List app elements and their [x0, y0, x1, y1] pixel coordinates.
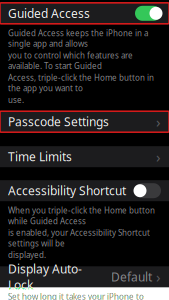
staticText: displayed.: [8, 250, 46, 260]
staticText: Time Limits: [8, 149, 72, 165]
staticText: Accessibility Shortcut: [8, 183, 126, 199]
staticText: ›: [156, 112, 161, 131]
staticText: Passcode Settings: [8, 114, 109, 130]
button[interactable]: Display Auto-Lock: [0, 266, 169, 287]
staticText: When you triple-click the Home button wh…: [8, 205, 155, 226]
staticText: ›: [156, 267, 161, 287]
staticText: Display Auto-Lock: [8, 261, 82, 293]
button[interactable]: Guided Access: [0, 3, 169, 24]
staticText: is enabled, your Accessibility Shortcut …: [8, 227, 150, 249]
staticText: Guided Access: [8, 5, 90, 21]
staticText: ›: [156, 147, 161, 166]
staticText: you to control which features are availa…: [8, 50, 133, 71]
button[interactable]: Passcode Settings: [0, 111, 169, 132]
button[interactable]: Time Limits: [0, 146, 169, 167]
staticText: Set how long it takes your iPhone to aut…: [8, 291, 144, 300]
staticText: use.: [8, 95, 24, 105]
staticText: Guided Access keeps the iPhone in a sing…: [8, 28, 148, 49]
staticText: Default: [111, 269, 152, 285]
staticText: Access, triple-click the Home button in …: [8, 72, 154, 93]
button[interactable]: Accessibility Shortcut: [0, 180, 169, 201]
